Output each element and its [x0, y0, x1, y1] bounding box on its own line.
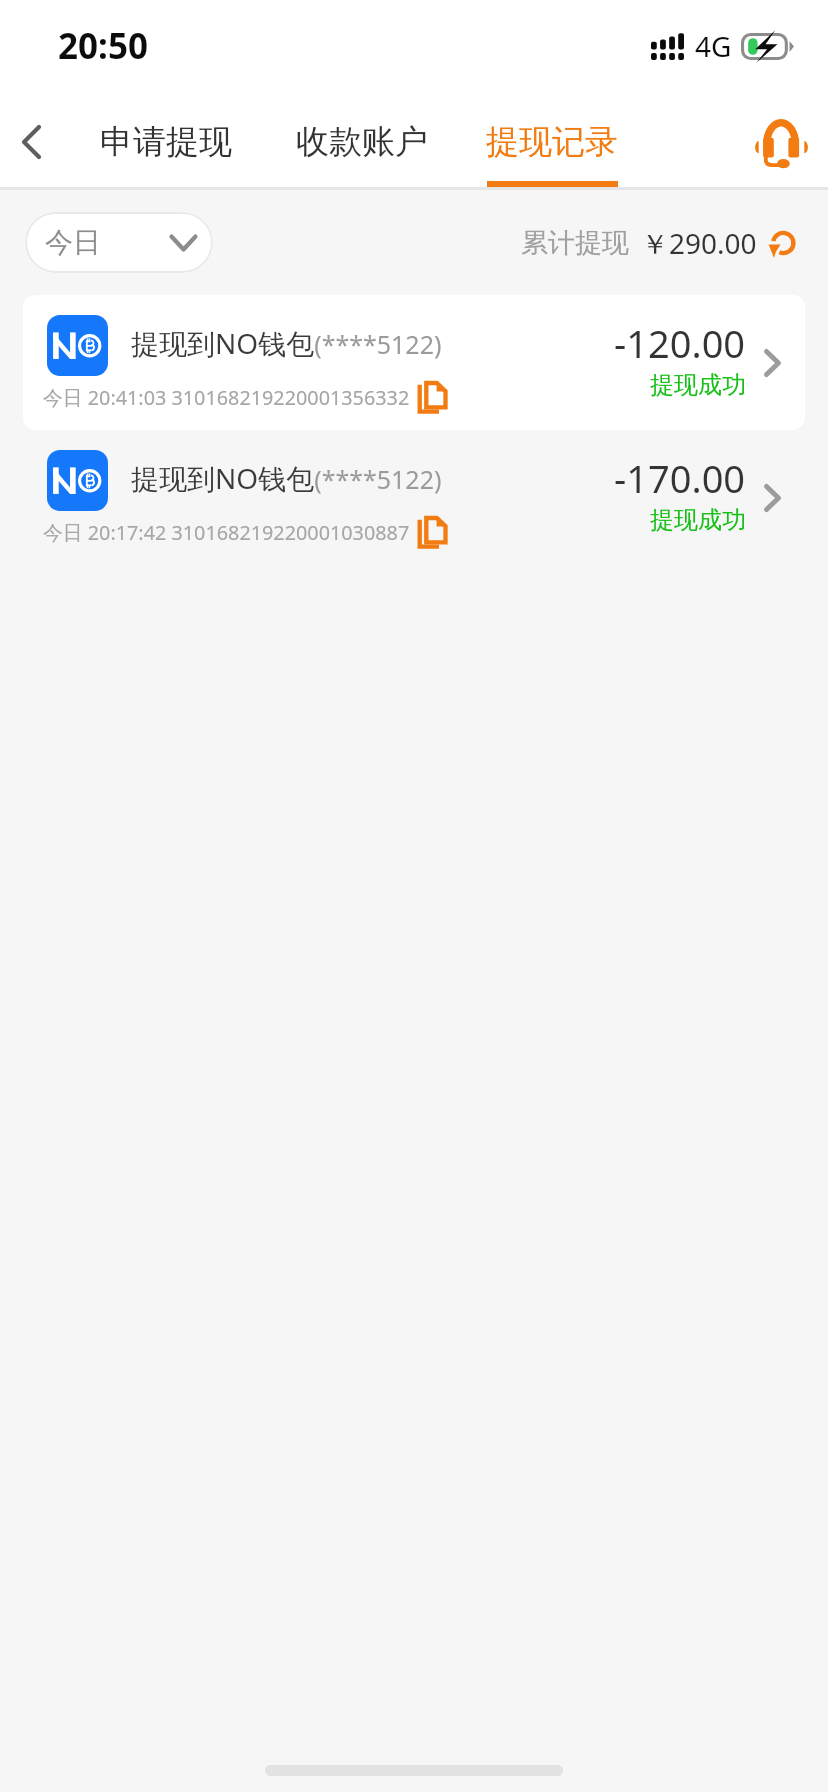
button[interactable]: Back: [0, 96, 62, 187]
staticText: 今日 20:17:42 310168219220001030887: [43, 519, 410, 546]
staticText: 今日: [45, 225, 101, 260]
staticText: 累计提现: [521, 226, 629, 260]
staticText: 提现成功: [650, 505, 746, 535]
button[interactable]: 今日: [25, 212, 213, 273]
button[interactable]: 收款账户: [296, 96, 428, 187]
button[interactable]: Copy: [414, 514, 450, 550]
staticText: 4G: [695, 27, 732, 65]
staticText: 20:50: [58, 22, 148, 70]
staticText: 提现到NO钱包(****5122): [131, 324, 442, 362]
staticText: ￥290.00: [641, 224, 757, 262]
staticText: 今日 20:41:03 310168219220001356332: [43, 384, 410, 411]
button[interactable]: 申请提现: [100, 96, 232, 187]
button[interactable]: 提现到NO钱包(****5122): [23, 295, 805, 430]
staticText: 收款账户: [296, 121, 428, 163]
staticText: -170.00: [614, 452, 746, 504]
staticText: 申请提现: [100, 121, 232, 163]
button[interactable]: Copy: [414, 379, 450, 415]
button[interactable]: 提现记录: [486, 96, 618, 187]
staticText: 提现记录: [486, 121, 618, 163]
staticText: 提现成功: [650, 370, 746, 400]
staticText: -120.00: [614, 317, 746, 369]
button[interactable]: 提现到NO钱包(****5122): [23, 430, 805, 565]
button[interactable]: Refresh: [768, 228, 798, 258]
button[interactable]: Customer service: [738, 99, 824, 185]
staticText: 提现到NO钱包(****5122): [131, 459, 442, 497]
